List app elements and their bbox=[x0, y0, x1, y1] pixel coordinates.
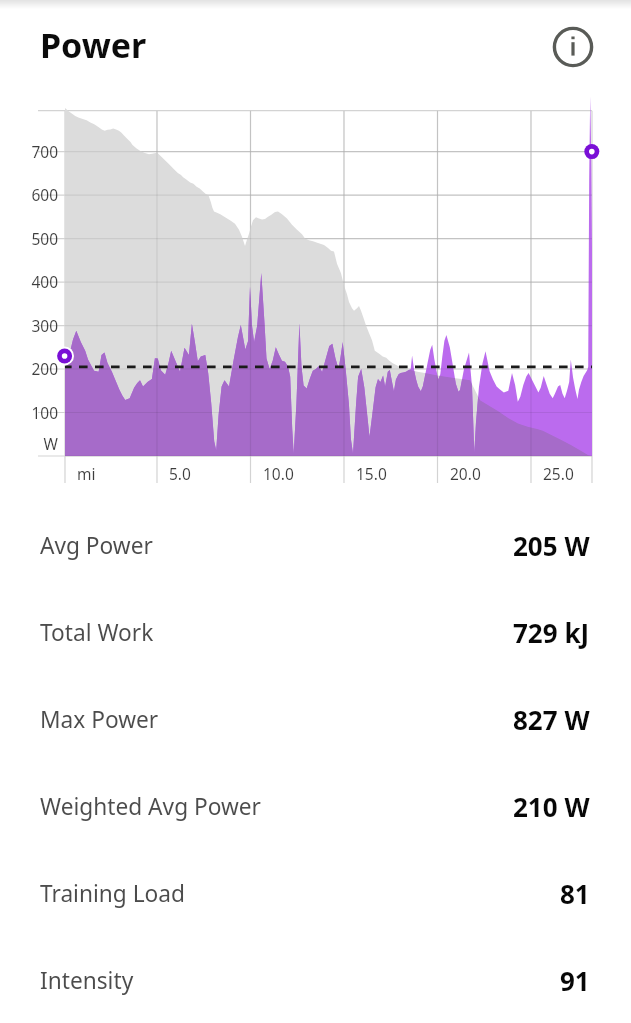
staticText: Max Power bbox=[40, 704, 159, 735]
staticText: 729 kJ bbox=[513, 615, 590, 650]
button[interactable]: Weighted Avg Power bbox=[0, 763, 631, 850]
staticText: 5.0 bbox=[169, 463, 191, 484]
staticText: mi bbox=[77, 463, 96, 484]
staticText: 15.0 bbox=[356, 463, 387, 484]
staticText: Weighted Avg Power bbox=[40, 791, 261, 822]
staticText: 500 bbox=[0, 228, 58, 249]
staticText: 25.0 bbox=[543, 463, 574, 484]
staticText: 20.0 bbox=[450, 463, 481, 484]
staticText: 700 bbox=[0, 141, 58, 162]
staticText: 205 W bbox=[513, 528, 590, 563]
staticText: Total Work bbox=[40, 617, 154, 648]
staticText: 81 bbox=[560, 876, 590, 911]
staticText: 400 bbox=[0, 271, 58, 292]
staticText: 100 bbox=[0, 402, 58, 423]
staticText: 91 bbox=[560, 963, 590, 998]
staticText: Avg Power bbox=[40, 530, 153, 561]
staticText: 10.0 bbox=[263, 463, 294, 484]
staticText: Training Load bbox=[40, 878, 186, 909]
staticText: Intensity bbox=[40, 965, 134, 996]
staticText: 300 bbox=[0, 315, 58, 336]
staticText: 827 W bbox=[513, 702, 590, 737]
staticText: W bbox=[0, 433, 58, 454]
button[interactable]: Max Power bbox=[0, 676, 631, 763]
staticText: 200 bbox=[0, 358, 58, 379]
button[interactable]: Info bbox=[549, 23, 597, 71]
button[interactable]: Training Load bbox=[0, 850, 631, 937]
staticText: 600 bbox=[0, 184, 58, 205]
staticText: 210 W bbox=[513, 789, 590, 824]
staticText: Power bbox=[40, 22, 147, 68]
button[interactable]: Total Work bbox=[0, 589, 631, 676]
button[interactable]: Intensity bbox=[0, 937, 631, 1023]
button[interactable]: Avg Power bbox=[0, 502, 631, 589]
